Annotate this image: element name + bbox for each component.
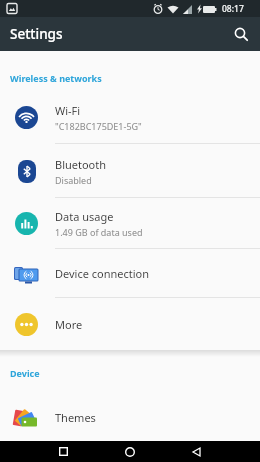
button[interactable]: Device connection <box>0 249 260 298</box>
staticText: "C182BC175DE1-5G" <box>55 120 142 132</box>
button[interactable]: More <box>0 298 260 350</box>
staticText: Settings <box>10 25 63 43</box>
button[interactable]: Wi-Fi <box>0 90 260 144</box>
staticText: Themes <box>55 410 96 425</box>
button[interactable]: Data usage <box>0 198 260 249</box>
button[interactable]: Themes <box>0 394 260 441</box>
staticText: More <box>55 317 83 332</box>
button[interactable] <box>230 23 252 45</box>
button[interactable]: Bluetooth <box>0 144 260 198</box>
staticText: Device <box>10 367 40 379</box>
staticText: Wireless & networks <box>10 72 102 84</box>
staticText: Data usage <box>55 209 114 224</box>
staticText: Wi-Fi <box>55 103 81 118</box>
staticText: Disabled <box>55 174 92 186</box>
staticText: 1.49 GB of data used <box>55 226 143 238</box>
staticText: 08:17 <box>222 3 244 15</box>
button[interactable] <box>112 441 148 462</box>
button[interactable] <box>178 441 214 462</box>
staticText: Device connection <box>55 266 150 281</box>
button[interactable] <box>45 441 81 462</box>
staticText: Bluetooth <box>55 157 107 172</box>
